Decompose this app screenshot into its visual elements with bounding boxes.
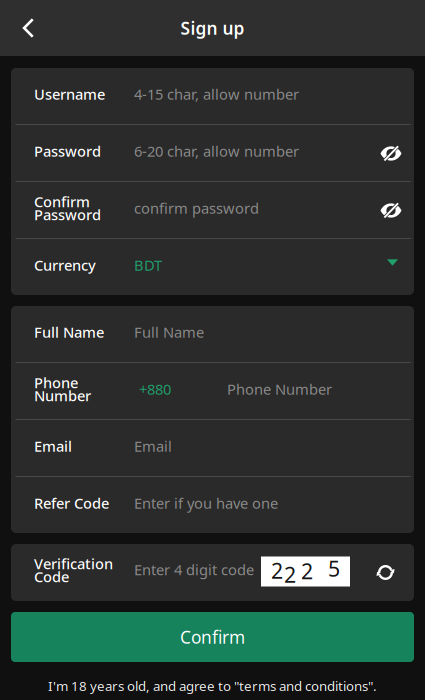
staticText: Number [34,386,91,405]
staticText: Password [34,205,101,224]
staticText: Password [34,141,101,161]
staticText: BDT [134,255,162,275]
staticText: 4-15 char, allow number [134,84,299,104]
staticText: Full Name [134,322,204,342]
staticText: Confirm [34,192,90,211]
staticText: 2 [301,557,313,585]
staticText: Email [34,436,72,456]
staticText: Phone [34,373,78,392]
staticText: Code [34,567,69,586]
staticText: Confirm [180,625,245,648]
staticText: Sign up [180,16,244,39]
staticText: confirm password [134,198,259,218]
button[interactable]: Show password [380,140,402,162]
staticText: Email [134,436,172,456]
staticText: +880 [139,379,171,399]
button[interactable]: Refresh code [363,550,408,595]
button[interactable]: Show confirm password [380,197,402,219]
staticText: Username [34,84,105,104]
staticText: 2 [271,556,283,585]
staticText: Phone Number [227,379,332,399]
staticText: 6-20 char, allow number [134,141,299,161]
staticText: Verification [34,554,113,573]
staticText: Currency [34,255,96,275]
button[interactable]: Currency [11,239,414,295]
staticText: 2 [284,560,296,589]
staticText: I'm 18 years old, and agree to "terms an… [48,677,377,695]
staticText: Enter if you have one [134,493,278,513]
staticText: 5 [328,554,340,583]
button[interactable]: Back [0,0,57,56]
staticText: Enter 4 digit code [134,560,254,579]
staticText: Full Name [34,322,104,342]
staticText: Refer Code [34,493,109,513]
button[interactable]: Confirm [11,612,414,662]
